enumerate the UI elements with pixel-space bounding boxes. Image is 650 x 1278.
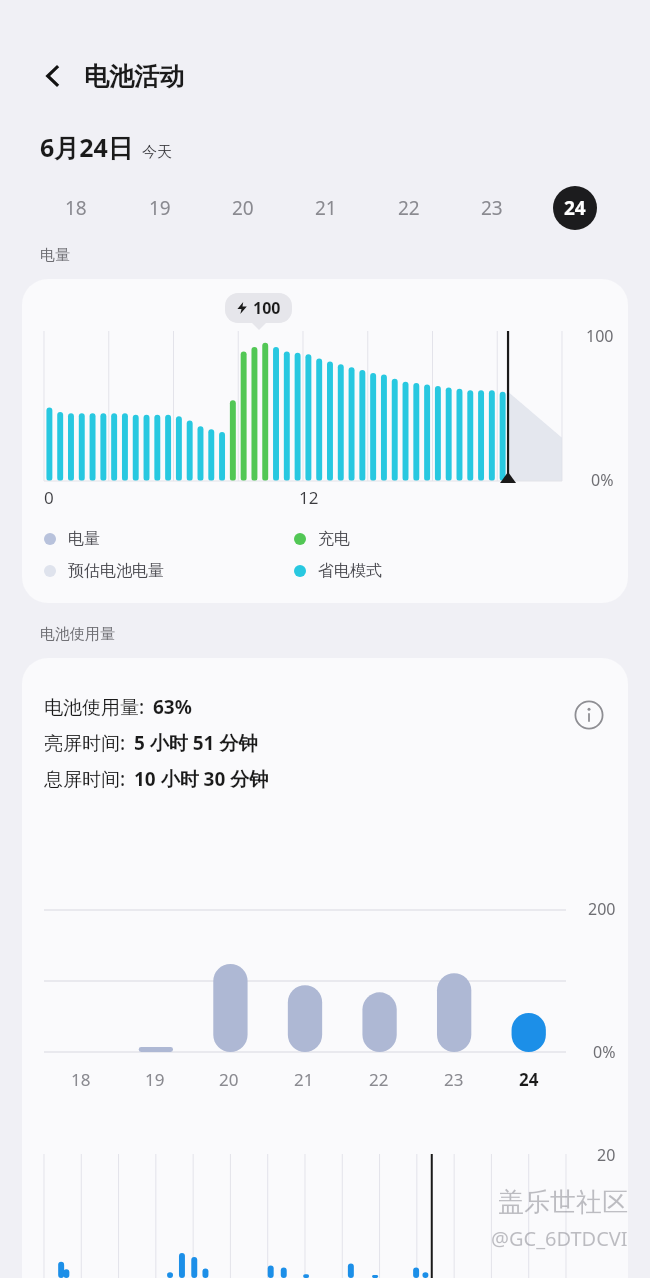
staticText: 电池使用量 <box>40 625 115 644</box>
staticText: 电池活动 <box>84 61 184 92</box>
staticText: 电量 <box>40 246 70 265</box>
staticText: 电量 <box>68 529 100 549</box>
staticText: 21 <box>315 195 337 221</box>
staticText: 200 <box>588 898 616 920</box>
button[interactable]: Back <box>36 59 70 93</box>
staticText: 22 <box>398 195 420 221</box>
button[interactable]: 19 <box>138 186 182 230</box>
staticText: 预估电池电量 <box>68 561 164 581</box>
button[interactable]: 22 <box>387 186 431 230</box>
staticText: 0% <box>591 469 614 491</box>
staticText: 6月24日 <box>40 130 133 164</box>
button[interactable]: 20 <box>221 186 265 230</box>
staticText: 20 <box>597 1144 616 1166</box>
staticText: 24 <box>564 195 586 221</box>
staticText: 63% <box>153 694 192 720</box>
button[interactable]: Information <box>570 696 608 734</box>
staticText: 0% <box>593 1041 616 1063</box>
button[interactable]: 21 <box>304 186 348 230</box>
staticText: 省电模式 <box>318 561 382 581</box>
button[interactable]: 0 <box>22 279 628 603</box>
staticText: 18 <box>71 1068 91 1091</box>
staticText: 22 <box>369 1068 389 1091</box>
staticText: 今天 <box>142 143 172 162</box>
staticText: 20 <box>219 1068 239 1091</box>
staticText: 100 <box>253 297 281 319</box>
staticText: 亮屏时间: <box>44 730 126 756</box>
staticText: 23 <box>481 195 503 221</box>
staticText: 24 <box>519 1068 539 1091</box>
staticText: 19 <box>145 1068 165 1091</box>
staticText: 23 <box>444 1068 464 1091</box>
staticText: 21 <box>294 1068 314 1091</box>
button[interactable]: 23 <box>470 186 514 230</box>
staticText: @GC_6DTDCVI <box>491 1225 628 1252</box>
staticText: 息屏时间: <box>44 766 126 792</box>
staticText: 盖乐世社区 <box>498 1186 628 1219</box>
button[interactable]: 24 <box>553 186 597 230</box>
staticText: 10 小时 30 分钟 <box>134 766 269 792</box>
staticText: 100 <box>586 325 614 347</box>
button[interactable]: 电池使用量: <box>22 658 628 1278</box>
staticText: 充电 <box>318 529 350 549</box>
staticText: 12 <box>299 486 319 509</box>
staticText: 电池使用量: <box>44 694 145 720</box>
button[interactable]: 18 <box>54 186 98 230</box>
staticText: 20 <box>232 195 254 221</box>
staticText: 0 <box>44 486 54 509</box>
staticText: 19 <box>149 195 171 221</box>
staticText: 18 <box>65 195 87 221</box>
staticText: 5 小时 51 分钟 <box>134 730 258 756</box>
